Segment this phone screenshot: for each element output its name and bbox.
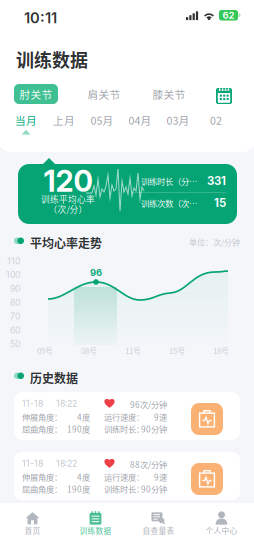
staticText: 肘关节: [19, 86, 52, 102]
staticText: 90分钟: [141, 423, 167, 435]
staticText: 训练平均心率: [41, 193, 95, 205]
staticText: 屈曲角度：: [22, 423, 62, 435]
staticText: 60: [10, 325, 20, 335]
staticText: 自查量表: [142, 525, 174, 536]
staticText: 上月: [53, 112, 75, 128]
staticText: 9速: [154, 471, 167, 483]
staticText: 02: [210, 112, 222, 128]
staticText: 96次/分钟: [130, 398, 167, 410]
staticText: 屈曲角度：: [22, 483, 62, 495]
button[interactable]: 肩关节: [82, 84, 126, 104]
staticText: 运行速度：: [104, 411, 144, 423]
button[interactable]: 查看报告: [191, 403, 223, 435]
button[interactable]: 当月: [7, 113, 45, 137]
staticText: 18:22: [56, 458, 77, 469]
staticText: 96: [90, 267, 102, 278]
staticText: 个人中心: [205, 525, 237, 536]
staticText: 训练数据: [16, 46, 88, 72]
button[interactable]: 训练数据: [64, 503, 127, 550]
staticText: 100: [6, 270, 20, 280]
staticText: 首页: [24, 525, 40, 536]
staticText: 训练时长：: [104, 483, 144, 495]
staticText: 单位：次/分钟: [189, 236, 240, 248]
staticText: 伸展角度：: [22, 471, 62, 483]
staticText: 190度: [67, 423, 90, 435]
staticText: 90: [10, 283, 20, 294]
staticText: 15号: [169, 345, 185, 356]
staticText: 50: [10, 339, 20, 349]
button[interactable]: 首页: [1, 503, 64, 550]
staticText: （次/分）: [48, 203, 87, 215]
button[interactable]: 上月: [45, 113, 83, 137]
staticText: 110: [7, 256, 20, 266]
staticText: 当月: [15, 112, 37, 128]
staticText: 11号: [125, 345, 141, 356]
staticText: 9速: [154, 411, 167, 423]
staticText: 70: [10, 311, 20, 322]
staticText: 训练次数（次）：: [141, 197, 204, 209]
staticText: 05号: [37, 345, 53, 356]
button[interactable]: 膝关节: [147, 84, 191, 104]
button[interactable]: 05月: [83, 113, 121, 137]
staticText: 190度: [67, 483, 90, 495]
staticText: 平均心率走势: [30, 234, 102, 251]
staticText: 伸展角度：: [22, 411, 62, 423]
staticText: 18号: [213, 345, 229, 356]
button[interactable]: 选择日期: [210, 82, 238, 110]
staticText: 88次/分钟: [130, 458, 167, 470]
staticText: 11-18: [22, 458, 43, 469]
staticText: 03月: [166, 112, 189, 128]
staticText: 80: [10, 297, 20, 308]
staticText: 历史数据: [30, 369, 78, 386]
staticText: 11-18: [22, 398, 43, 409]
button[interactable]: 03月: [159, 113, 197, 137]
button[interactable]: 肘关节: [14, 84, 58, 104]
staticText: 训练数据: [79, 525, 111, 536]
staticText: 训练时长（分钟）：: [141, 175, 204, 187]
staticText: 训练时长：: [104, 423, 144, 435]
staticText: 120: [43, 163, 92, 199]
button[interactable]: 04月: [121, 113, 159, 137]
staticText: 04月: [128, 112, 151, 128]
staticText: 10:11: [24, 9, 57, 27]
staticText: 331: [207, 174, 226, 188]
staticText: 运行速度：: [104, 471, 144, 483]
staticText: 62: [222, 10, 234, 21]
staticText: 4度: [77, 411, 90, 423]
staticText: 08号: [81, 345, 97, 356]
staticText: 肩关节: [87, 86, 120, 102]
staticText: 4度: [77, 471, 90, 483]
button[interactable]: 自查量表: [127, 503, 190, 550]
button[interactable]: 查看报告: [191, 463, 223, 495]
button[interactable]: 02: [197, 113, 235, 137]
staticText: 90分钟: [141, 483, 167, 495]
staticText: 膝关节: [152, 86, 185, 102]
staticText: 18:22: [56, 398, 77, 409]
staticText: 05月: [90, 112, 113, 128]
button[interactable]: 个人中心: [190, 503, 253, 550]
staticText: 15: [214, 196, 226, 210]
